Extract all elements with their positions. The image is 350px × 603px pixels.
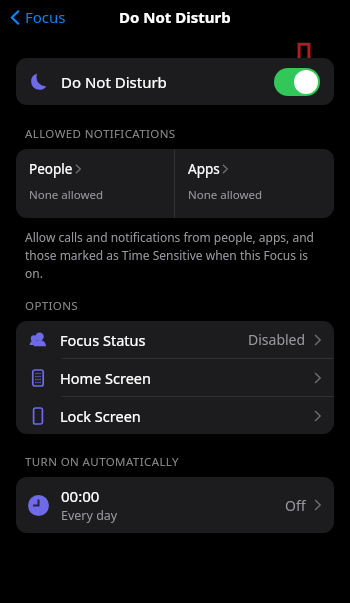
button[interactable]: Apps [175,149,334,218]
staticText: None allowed [188,187,262,203]
staticText: Focus Status [60,330,146,350]
staticText: Do Not Disturb [119,7,231,27]
staticText: Apps [188,160,220,178]
button[interactable]: Do Not Disturb toggle, on [274,68,320,96]
staticText: None allowed [29,187,103,203]
staticText: Allow calls and notifications from peopl… [25,229,314,282]
staticText: Every day [61,507,118,524]
staticText: Home Screen [60,368,151,388]
staticText: TURN ON AUTOMATICALLY [25,454,179,470]
button[interactable]: People [16,149,174,218]
button[interactable]: Do Not Disturb [16,58,334,105]
staticText: 00:00 [61,486,100,506]
staticText: Focus [25,7,66,27]
staticText: Lock Screen [60,406,141,426]
button[interactable]: Focus [8,4,68,30]
staticText: Off [285,496,306,515]
button[interactable]: 00:00 [16,477,334,533]
button[interactable]: Lock Screen [16,397,334,434]
staticText: Do Not Disturb [61,72,167,92]
staticText: Disabled [248,330,306,349]
button[interactable]: Home Screen [16,359,334,396]
button[interactable]: Focus Status [16,321,334,358]
staticText: People [29,160,73,178]
staticText: ALLOWED NOTIFICATIONS [25,126,176,142]
staticText: OPTIONS [25,298,79,314]
